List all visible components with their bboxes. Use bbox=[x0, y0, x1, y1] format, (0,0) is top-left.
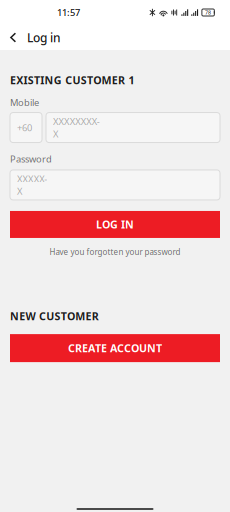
staticText: 78 bbox=[205, 9, 211, 16]
button[interactable]: CREATE ACCOUNT bbox=[10, 334, 220, 362]
staticText: Log in bbox=[27, 29, 61, 45]
staticText: XXXXXXXXX bbox=[53, 115, 100, 140]
staticText: 11:57 bbox=[57, 6, 80, 19]
button[interactable]: Have you forgotten your password bbox=[10, 245, 220, 259]
staticText: XXXXXX bbox=[17, 173, 47, 197]
button[interactable]: XXXXXX bbox=[10, 170, 220, 200]
button[interactable]: LOG IN bbox=[10, 211, 220, 238]
staticText: EXISTING CUSTOMER 1 bbox=[10, 73, 134, 87]
staticText: +60 bbox=[17, 121, 32, 134]
staticText: LOG IN bbox=[96, 217, 134, 232]
button[interactable]: Back bbox=[10, 25, 27, 50]
button[interactable]: +60 bbox=[10, 113, 42, 143]
staticText: CREATE ACCOUNT bbox=[68, 341, 162, 355]
staticText: Password bbox=[10, 153, 52, 165]
staticText: Have you forgotten your password bbox=[49, 247, 180, 257]
staticText: Mobile bbox=[10, 96, 39, 109]
staticText: NEW CUSTOMER bbox=[10, 309, 99, 323]
button[interactable]: XXXXXXXXX bbox=[46, 113, 220, 143]
